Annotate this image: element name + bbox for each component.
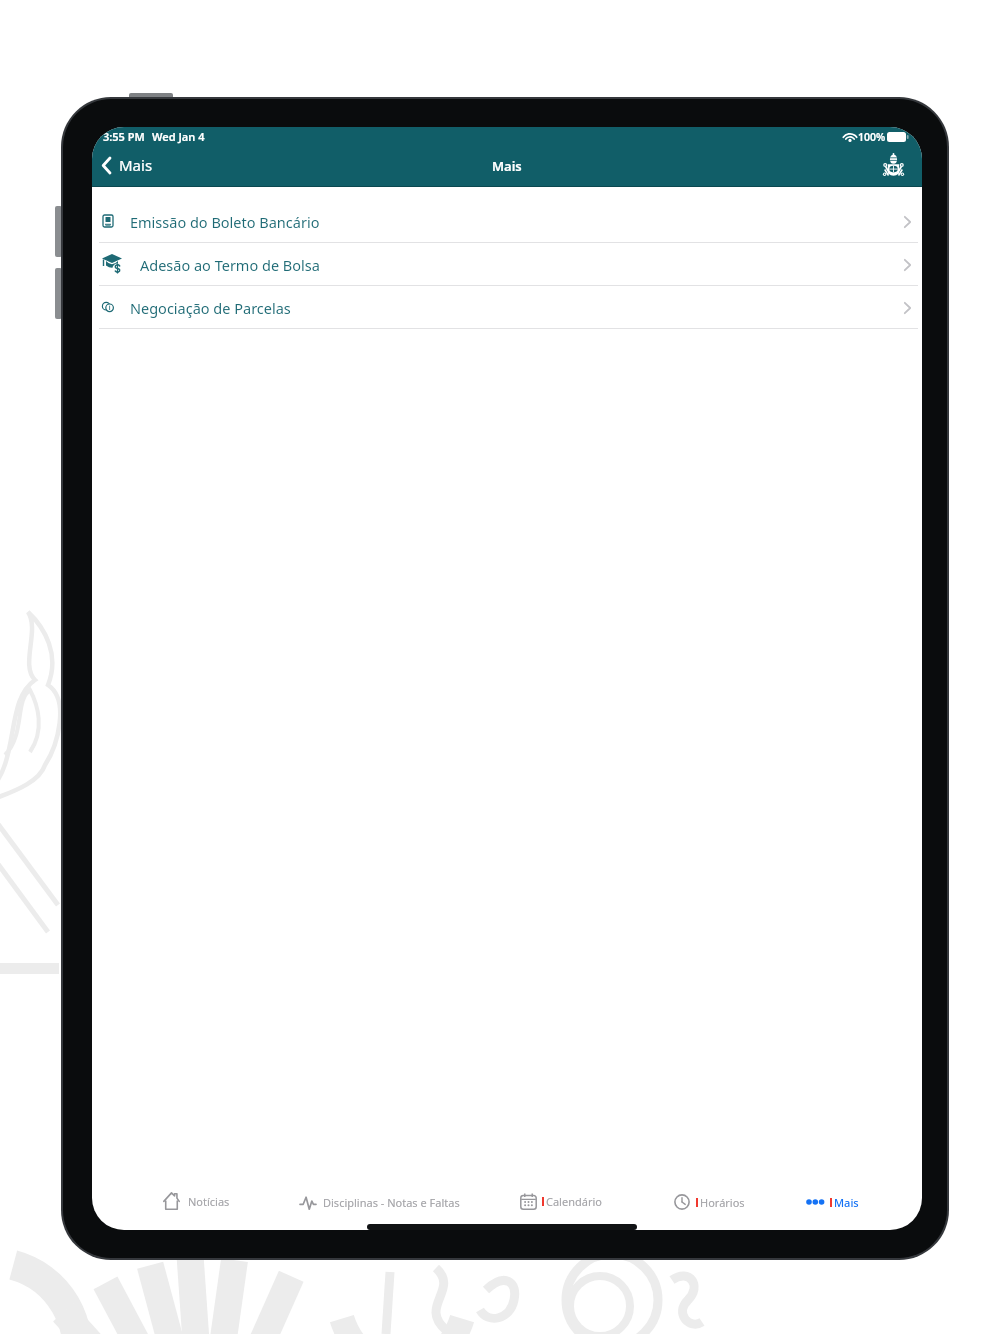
button[interactable]: Emissão do Boleto Bancário [92, 200, 922, 243]
staticText: Emissão do Boleto Bancário [130, 212, 320, 232]
button[interactable]: Notícias [163, 1191, 230, 1211]
button[interactable]: Mais [806, 1193, 859, 1211]
staticText: Adesão ao Termo de Bolsa [140, 255, 320, 275]
button[interactable]: Mais [102, 155, 153, 175]
button[interactable]: Horários [674, 1193, 745, 1211]
button[interactable]: Adesão ao Termo de Bolsa [92, 243, 922, 286]
staticText: Mais [834, 1195, 859, 1210]
button[interactable]: Disciplinas - Notas e Faltas [300, 1193, 460, 1211]
staticText: Calendário [546, 1194, 602, 1209]
staticText: Negociação de Parcelas [130, 298, 291, 318]
staticText: Mais [492, 157, 522, 175]
staticText: Mais [119, 155, 153, 175]
staticText: Disciplinas - Notas e Faltas [323, 1195, 460, 1210]
button[interactable]: Negociação de Parcelas [92, 286, 922, 329]
staticText: 3:55 PM [103, 129, 145, 144]
staticText: Horários [700, 1195, 745, 1210]
staticText: Notícias [188, 1194, 230, 1209]
staticText: Wed Jan 4 [152, 129, 205, 144]
button[interactable]: Calendário [520, 1192, 602, 1211]
staticText: 100% [858, 130, 886, 144]
